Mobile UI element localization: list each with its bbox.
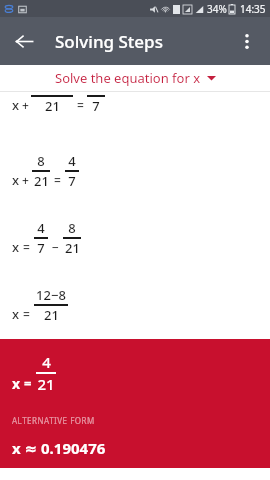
button[interactable]: Back	[4, 21, 44, 61]
staticText: 21	[65, 239, 80, 257]
staticText: 8	[68, 219, 76, 237]
staticText: 7	[68, 172, 76, 190]
staticText: 21	[37, 374, 55, 394]
staticText: 34%	[207, 2, 227, 16]
staticText: 21	[44, 306, 59, 324]
staticText: +	[22, 97, 29, 113]
staticText: x	[12, 374, 21, 393]
staticText: 21	[34, 172, 49, 190]
button[interactable]: x	[0, 92, 270, 137]
staticText: −	[52, 239, 59, 255]
staticText: 4	[37, 219, 45, 237]
staticText: ALTERNATIVE FORM	[12, 415, 95, 426]
staticText: Solving Steps	[55, 30, 163, 53]
staticText: 8	[37, 152, 45, 170]
button[interactable]: x	[0, 204, 270, 271]
staticText: 14:35	[240, 2, 266, 16]
staticText: =	[23, 239, 30, 255]
staticText: 4	[68, 152, 76, 170]
staticText: =	[24, 374, 32, 392]
staticText: 7	[92, 97, 100, 115]
staticText: =	[54, 172, 61, 188]
staticText: 4	[42, 352, 51, 372]
staticText: x	[12, 305, 20, 323]
button[interactable]: x	[0, 137, 270, 204]
button[interactable]: x	[0, 271, 270, 338]
button[interactable]: More options	[227, 21, 267, 61]
button[interactable]: Solve the equation for x	[0, 65, 270, 91]
staticText: 12−8	[36, 286, 66, 304]
staticText: 21	[45, 97, 60, 115]
button[interactable]: x	[0, 339, 270, 468]
staticText: x	[12, 171, 20, 189]
staticText: =	[23, 306, 30, 322]
staticText: +	[22, 172, 29, 188]
staticText: =	[77, 97, 84, 113]
staticText: Solve the equation for x	[55, 69, 201, 87]
staticText: x	[12, 238, 20, 256]
staticText: x ≈ 0.190476	[12, 438, 106, 458]
staticText: 7	[37, 239, 45, 257]
staticText: x	[12, 96, 20, 114]
